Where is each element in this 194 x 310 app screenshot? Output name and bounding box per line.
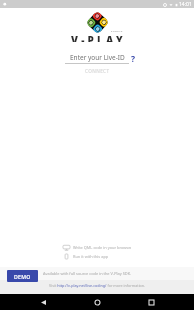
staticText: Enter your Live-ID <box>70 53 125 62</box>
button[interactable]: Run it with this app <box>63 253 131 260</box>
staticText: Run it with this app <box>73 254 109 259</box>
staticText: Available with full source code in the V… <box>43 271 132 276</box>
staticText: ? <box>131 53 136 63</box>
button[interactable]: Enter your Live-ID <box>65 53 129 64</box>
button[interactable]: DEMO <box>7 270 38 282</box>
staticText: DEMO <box>14 273 31 280</box>
staticText: 14:01 <box>179 1 192 8</box>
button[interactable]: Home <box>86 294 108 310</box>
staticText: V-PLAY <box>71 33 126 42</box>
button[interactable]: Help <box>129 53 138 63</box>
button[interactable]: Write QML code in your browser <box>63 244 131 251</box>
staticText: Write QML code in your browser <box>73 245 131 250</box>
staticText: CONNECT <box>85 68 110 74</box>
button[interactable]: Visit http://v-play.net/live-coding/ for… <box>49 283 146 288</box>
button[interactable]: Recent apps <box>140 294 162 310</box>
button[interactable]: Back <box>32 294 54 310</box>
staticText: ENGINE <box>111 29 123 32</box>
staticText: Visit http://v-play.net/live-coding/ for… <box>49 283 146 288</box>
